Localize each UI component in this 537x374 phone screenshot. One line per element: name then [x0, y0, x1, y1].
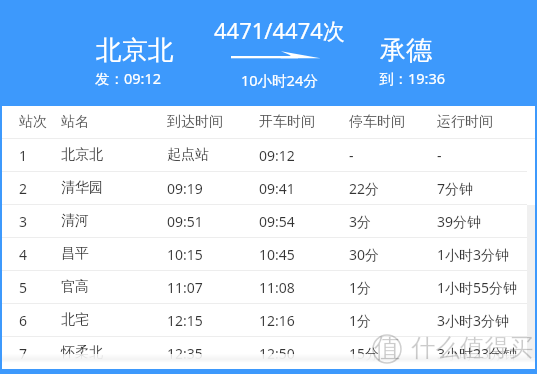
staticText: 清河: [61, 212, 89, 230]
button[interactable]: 4: [2, 238, 535, 270]
staticText: 值: [374, 332, 400, 365]
staticText: 1小时55分钟: [437, 278, 518, 297]
staticText: 发：09:12: [95, 68, 162, 88]
staticText: 3分: [349, 212, 372, 231]
staticText: 怀柔北: [61, 344, 103, 362]
staticText: 2: [19, 179, 28, 198]
staticText: 09:54: [259, 212, 295, 231]
staticText: 昌平: [61, 245, 89, 263]
staticText: 1: [19, 146, 28, 165]
staticText: 12:16: [259, 311, 295, 330]
staticText: 清华园: [61, 179, 103, 197]
button[interactable]: 5: [2, 271, 535, 303]
staticText: 停车时间: [349, 113, 405, 131]
staticText: 1分: [349, 278, 372, 297]
staticText: 4: [19, 245, 28, 264]
staticText: 22分: [349, 179, 380, 198]
staticText: 站名: [61, 113, 89, 131]
staticText: 北京北: [96, 34, 174, 67]
staticText: 11:08: [259, 278, 295, 297]
staticText: 09:12: [259, 146, 295, 165]
staticText: 北宅: [61, 311, 89, 329]
staticText: 10:45: [259, 245, 295, 264]
staticText: 30分: [349, 245, 380, 264]
staticText: 12:15: [167, 311, 203, 330]
staticText: -: [437, 146, 442, 165]
staticText: 3小时3分钟: [437, 311, 510, 330]
staticText: 09:51: [167, 212, 203, 231]
staticText: 6: [19, 311, 28, 330]
staticText: 3小时23分钟: [437, 344, 518, 363]
staticText: 到达时间: [167, 113, 223, 131]
staticText: -: [349, 146, 354, 165]
button[interactable]: 2: [2, 172, 535, 204]
staticText: 10小时24分: [241, 70, 318, 90]
button[interactable]: 3: [2, 205, 535, 237]
staticText: 站次: [19, 113, 47, 131]
staticText: 开车时间: [259, 113, 315, 131]
staticText: 4471/4474次: [214, 15, 345, 45]
staticText: 北京北: [61, 146, 103, 164]
button[interactable]: 7: [2, 337, 535, 369]
staticText: 7: [19, 344, 28, 363]
staticText: 起点站: [167, 146, 209, 164]
staticText: 到：19:36: [379, 68, 446, 88]
staticText: 10:15: [167, 245, 203, 264]
staticText: 什么值得买: [411, 332, 534, 363]
staticText: 运行时间: [437, 113, 493, 131]
staticText: 11:07: [167, 278, 203, 297]
staticText: 1分: [349, 311, 372, 330]
button[interactable]: 1: [2, 139, 535, 171]
staticText: 12:50: [259, 344, 295, 363]
staticText: 12:35: [167, 344, 203, 363]
staticText: 09:19: [167, 179, 203, 198]
staticText: 官高: [61, 278, 89, 296]
staticText: 1小时3分钟: [437, 245, 510, 264]
staticText: 3: [19, 212, 28, 231]
staticText: 7分钟: [437, 179, 474, 198]
staticText: 39分钟: [437, 212, 482, 231]
button[interactable]: 6: [2, 304, 535, 336]
staticText: 09:41: [259, 179, 295, 198]
staticText: 承德: [380, 34, 432, 67]
staticText: 15分: [349, 344, 380, 363]
staticText: 5: [19, 278, 28, 297]
